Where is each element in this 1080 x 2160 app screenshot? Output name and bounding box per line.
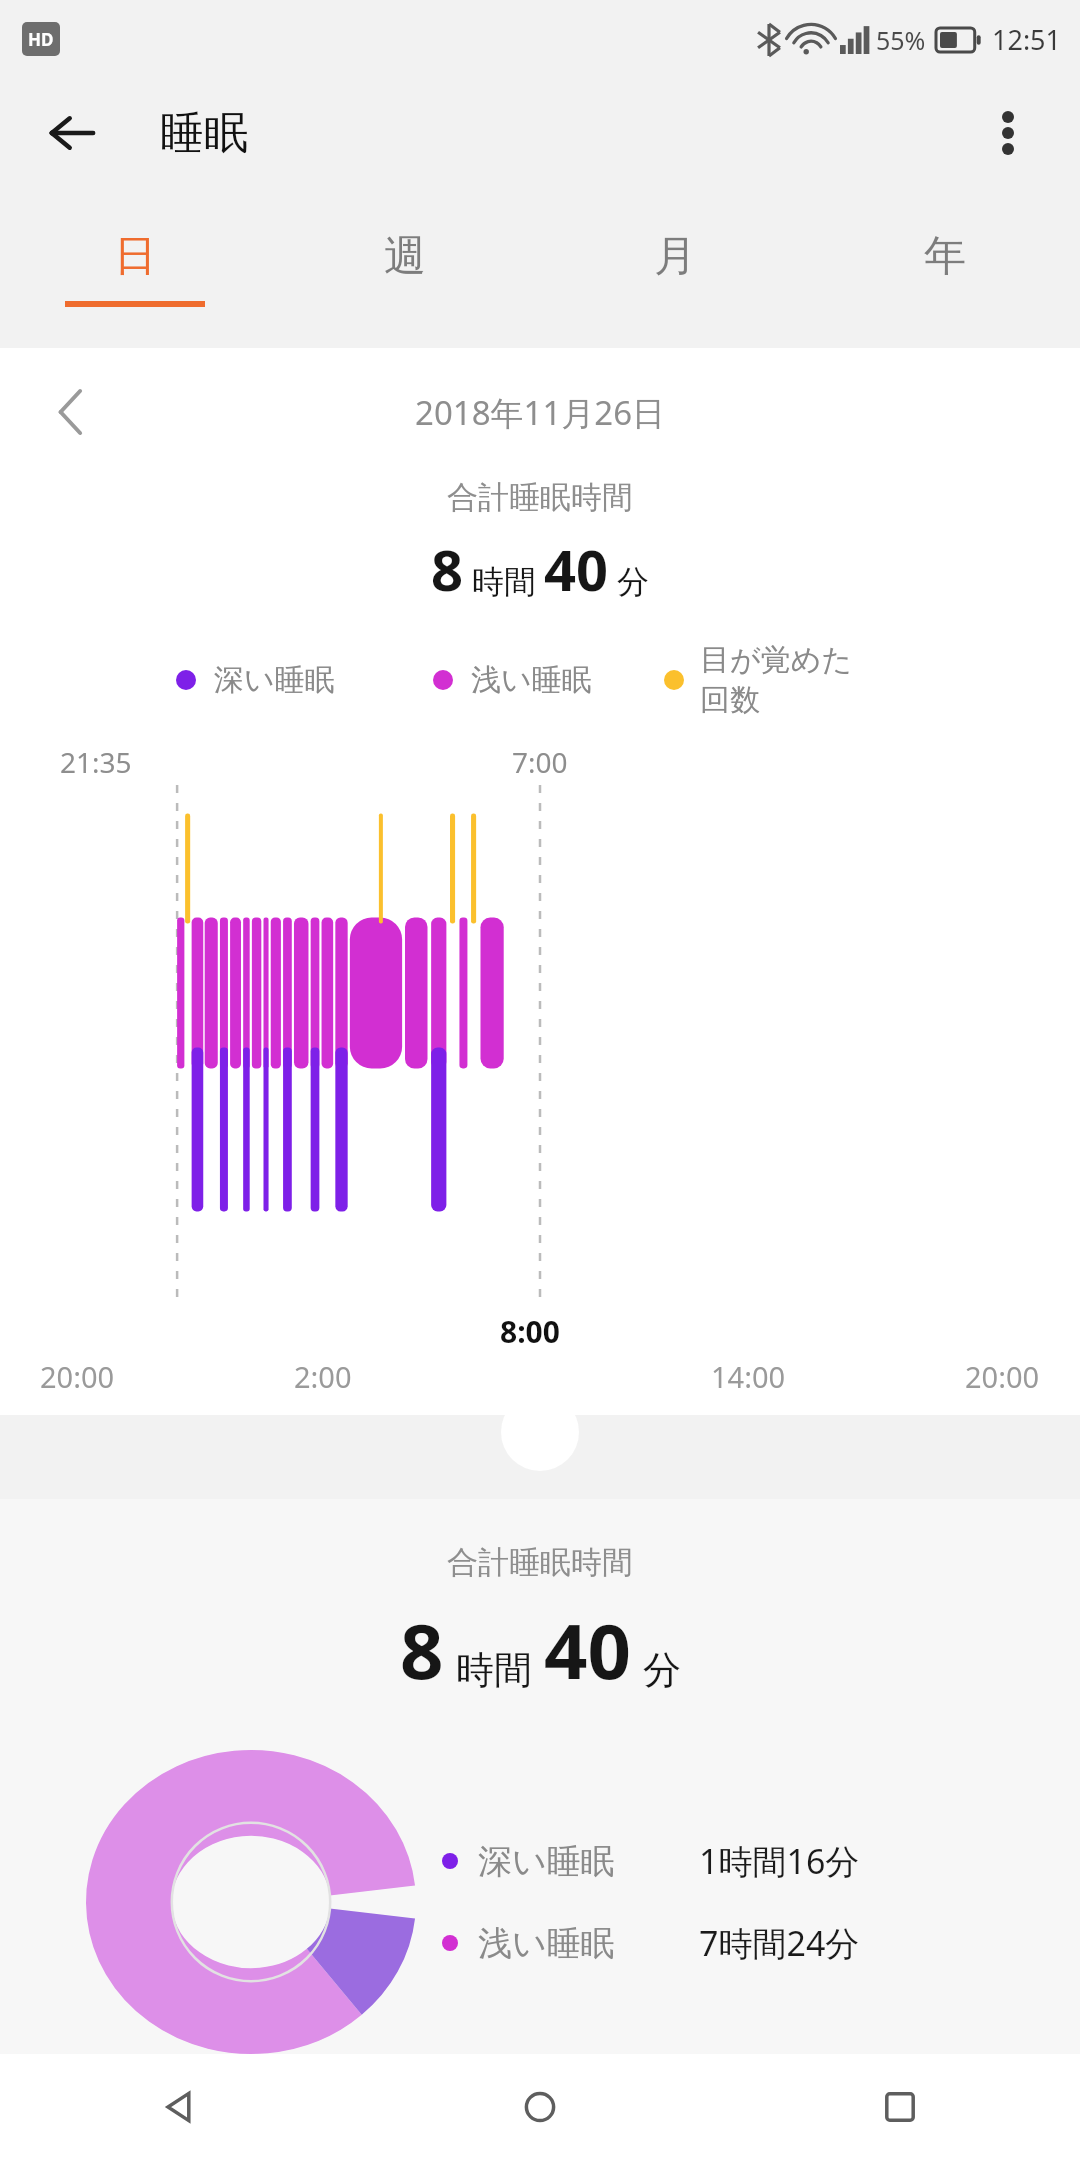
staticText: 8 <box>431 531 464 607</box>
staticText: 年 <box>924 230 966 283</box>
staticText: 睡眠 <box>160 106 248 161</box>
staticText: 分 <box>643 1646 681 1694</box>
staticText: 目が覚めた 回数 <box>700 641 853 719</box>
button[interactable]: 日 <box>0 188 270 348</box>
button[interactable]: 週 <box>270 188 540 348</box>
staticText: 7:00 <box>512 743 568 781</box>
button[interactable]: Recents <box>720 2054 1080 2160</box>
staticText: 分 <box>617 562 649 602</box>
staticText: 合計睡眠時間 <box>0 478 1080 517</box>
staticText: 40 <box>544 531 609 607</box>
staticText: 12:51 <box>992 21 1062 58</box>
staticText: 8 <box>400 1598 444 1702</box>
button[interactable]: More options <box>972 97 1044 169</box>
staticText: 21:35 <box>60 743 132 781</box>
staticText: 14:00 <box>711 1357 786 1396</box>
button[interactable]: Back <box>0 2054 360 2160</box>
button[interactable]: Time scrubber <box>501 1393 579 1471</box>
staticText: 40 <box>544 1598 631 1702</box>
staticText: 2:00 <box>294 1357 352 1396</box>
staticText: 合計睡眠時間 <box>0 1543 1080 1582</box>
staticText: 時間 <box>456 1646 532 1694</box>
staticText: 深い睡眠 <box>478 1840 615 1883</box>
staticText: 20:00 <box>965 1357 1040 1396</box>
button[interactable]: 月 <box>540 188 810 348</box>
button[interactable]: Back <box>36 97 108 169</box>
staticText: 55% <box>876 23 926 57</box>
button[interactable]: 年 <box>810 188 1080 348</box>
staticText: 浅い睡眠 <box>471 661 592 699</box>
staticText: 週 <box>384 230 426 283</box>
staticText: 日 <box>114 230 156 283</box>
staticText: 7時間24分 <box>699 1920 860 1966</box>
staticText: 時間 <box>472 562 536 602</box>
staticText: 月 <box>654 230 696 283</box>
staticText: 深い睡眠 <box>214 661 335 699</box>
staticText: HD <box>28 28 54 51</box>
staticText: 1時間16分 <box>699 1838 860 1884</box>
button[interactable]: Home <box>360 2054 720 2160</box>
staticText: 20:00 <box>40 1357 115 1396</box>
staticText: 2018年11月26日 <box>415 390 666 435</box>
staticText: 浅い睡眠 <box>478 1922 615 1965</box>
staticText: 8:00 <box>500 1311 560 1352</box>
button[interactable]: Previous day <box>36 377 106 447</box>
